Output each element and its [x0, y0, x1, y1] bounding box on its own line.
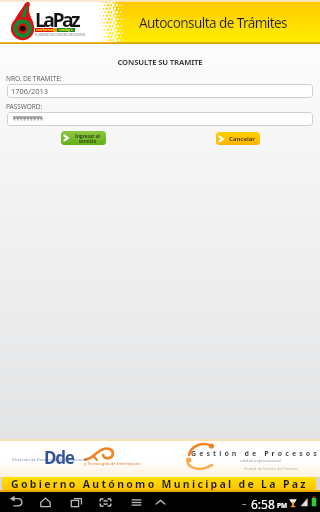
staticText: –	[242, 497, 247, 509]
staticText: NRO. DE TRAMITE:	[6, 74, 62, 83]
staticText: Gestión de Procesos	[191, 449, 320, 459]
button[interactable]: Hide navigation	[149, 492, 171, 512]
button[interactable]: Home	[34, 492, 56, 512]
staticText: CONSULTE SU TRAMITE	[0, 57, 320, 67]
button[interactable]: Cancelar	[216, 132, 260, 145]
staticText: 1706/2013	[11, 86, 49, 96]
staticText: Ingresar al servicio	[70, 133, 105, 144]
staticText: Dirección de Desarrollo Organizacional	[12, 457, 88, 462]
button[interactable]: Recent apps	[65, 492, 87, 512]
staticText: Gobierno Autónomo Municipal de La Paz	[11, 477, 308, 490]
staticText: Cancelar	[225, 135, 259, 143]
button[interactable]	[7, 112, 313, 126]
staticText: con ley's	[59, 28, 73, 32]
staticText: calidad organizacional	[240, 458, 282, 462]
staticText: Autoconsulta de Trámites	[139, 14, 288, 32]
staticText: GOBIERNO AUTONOMO MUNICIPAL	[35, 33, 86, 37]
staticText: PM	[277, 501, 288, 510]
staticText: Unidad de Gestión de Procesos	[244, 466, 298, 470]
staticText: con fuerza	[36, 28, 53, 32]
button[interactable]: 1706/2013	[7, 84, 313, 98]
staticText: PASSWORD:	[6, 102, 43, 111]
staticText: 6:58	[251, 496, 275, 512]
button[interactable]: Screenshot	[94, 492, 116, 512]
staticText: y Tecnologías de Información	[84, 461, 141, 466]
staticText: LaPaz	[35, 6, 78, 33]
button[interactable]: Ingresar al servicio	[61, 131, 106, 145]
staticText: Dde	[44, 446, 74, 469]
button[interactable]: Back	[5, 492, 27, 512]
button[interactable]: Menu	[125, 492, 147, 512]
